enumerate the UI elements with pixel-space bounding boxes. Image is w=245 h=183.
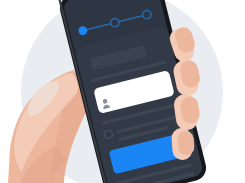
button[interactable]: Illustration of a hand holding a phone s… xyxy=(0,0,245,183)
